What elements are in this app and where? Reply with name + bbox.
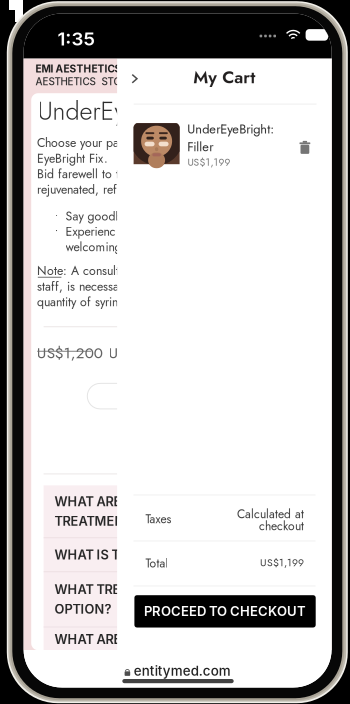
staticText: Filler bbox=[187, 137, 213, 156]
staticText: • bbox=[55, 207, 59, 225]
staticText: 1:35 bbox=[58, 27, 95, 50]
staticText: Bid farewell to th bbox=[37, 165, 125, 183]
staticText: quantity of syrin bbox=[37, 293, 118, 311]
staticText: EyeBright Fix. bbox=[37, 149, 108, 167]
staticText: Choose your pa bbox=[37, 134, 119, 152]
button[interactable]: WHAT ARE TH bbox=[44, 627, 306, 651]
staticText: Taxes bbox=[145, 510, 171, 528]
staticText: US$1,199 bbox=[187, 155, 230, 170]
staticText: WHAT TREAT bbox=[54, 582, 136, 597]
staticText: TREATMENTS bbox=[54, 513, 140, 529]
staticText: PROCEED TO CHECKOUT bbox=[144, 603, 306, 619]
button[interactable]: WHAT IS THE bbox=[44, 538, 306, 571]
staticText: UnderEyeBright: bbox=[187, 120, 274, 138]
staticText: WHAT IS THE bbox=[54, 547, 137, 563]
staticText: checkout bbox=[259, 517, 304, 535]
staticText: UnderEyeBright bbox=[38, 93, 200, 129]
staticText: US$1,200 bbox=[37, 342, 103, 364]
staticText: WHAT ARE U bbox=[54, 494, 133, 509]
button[interactable]: WHAT ARE U bbox=[44, 485, 306, 537]
button[interactable]: entitymed.com bbox=[24, 661, 332, 681]
staticText: Note: A consulta bbox=[37, 262, 125, 280]
button[interactable]: WHAT TREAT bbox=[44, 572, 306, 627]
staticText: My Cart bbox=[193, 65, 255, 90]
staticText: US$1,199 bbox=[260, 555, 304, 570]
staticText: entitymed.com bbox=[134, 663, 231, 679]
staticText: Experienc bbox=[66, 223, 116, 240]
staticText: staff, is necessa bbox=[37, 277, 119, 295]
staticText: WHAT ARE TH bbox=[54, 632, 142, 647]
staticText: rejuvenated, ref bbox=[37, 181, 117, 198]
staticText: EMI AESTHETICS bbox=[35, 63, 121, 75]
staticText: OPTION? bbox=[54, 601, 111, 617]
staticText: Calculated at bbox=[237, 505, 304, 523]
button[interactable]: PROCEED TO CHECKOUT bbox=[134, 595, 316, 627]
button[interactable]: Remove item bbox=[292, 132, 318, 158]
staticText: AESTHETICS STORE bbox=[35, 76, 133, 87]
staticText: welcoming bbox=[66, 238, 122, 256]
staticText: U bbox=[109, 342, 119, 364]
button[interactable]: Close cart bbox=[120, 64, 150, 94]
staticText: Say goodb bbox=[66, 207, 123, 225]
staticText: • bbox=[55, 223, 59, 240]
staticText: Total bbox=[145, 555, 168, 572]
